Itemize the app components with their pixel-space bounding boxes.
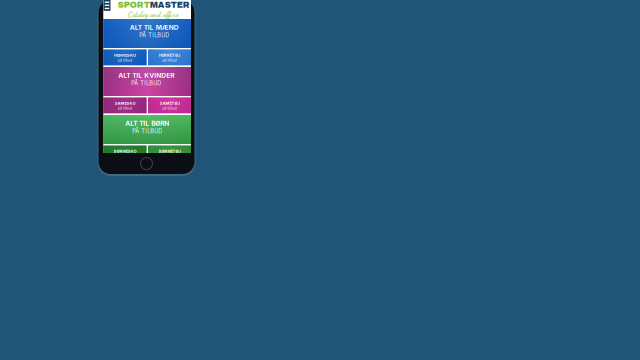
button[interactable]: ALT TIL MÆND bbox=[103, 19, 191, 48]
button[interactable]: HERRESKO bbox=[103, 49, 146, 65]
staticText: BØRNETØJ bbox=[158, 149, 180, 154]
staticText: SPORT bbox=[118, 0, 150, 10]
button[interactable]: DAMESKO bbox=[103, 97, 146, 113]
staticText: MASTER bbox=[150, 0, 190, 10]
button[interactable]: ALT TIL KVINDER bbox=[103, 67, 191, 96]
staticText: DAMETØJ bbox=[159, 101, 179, 106]
staticText: HERRETØJ bbox=[159, 53, 180, 58]
staticText: på tilbud bbox=[162, 58, 176, 62]
staticText: ALT TIL KVINDER bbox=[118, 71, 174, 79]
staticText: på tilbud bbox=[162, 106, 176, 110]
button[interactable]: Home bbox=[140, 157, 152, 169]
button[interactable]: BØRNETØJ bbox=[148, 145, 191, 161]
button[interactable]: BØRNESKO bbox=[103, 145, 146, 161]
button[interactable]: HERRETØJ bbox=[148, 49, 191, 65]
staticText: BØRNESKO bbox=[113, 149, 136, 154]
staticText: Catalog and offers bbox=[128, 10, 179, 19]
staticText: PÅ TILBUD bbox=[131, 80, 161, 87]
staticText: PÅ TILBUD bbox=[132, 128, 162, 135]
button[interactable]: Menu bbox=[103, 0, 110, 11]
button[interactable]: DAMETØJ bbox=[148, 97, 191, 113]
staticText: på tilbud bbox=[118, 58, 132, 62]
staticText: på tilbud bbox=[118, 106, 132, 110]
staticText: ALT TIL MÆND bbox=[130, 23, 179, 31]
button[interactable]: ALT TIL BØRN bbox=[103, 115, 191, 144]
staticText: HERRESKO bbox=[114, 53, 136, 58]
staticText: ALT TIL BØRN bbox=[125, 119, 169, 127]
staticText: DAMESKO bbox=[114, 101, 135, 106]
staticText: PÅ TILBUD bbox=[139, 32, 169, 39]
